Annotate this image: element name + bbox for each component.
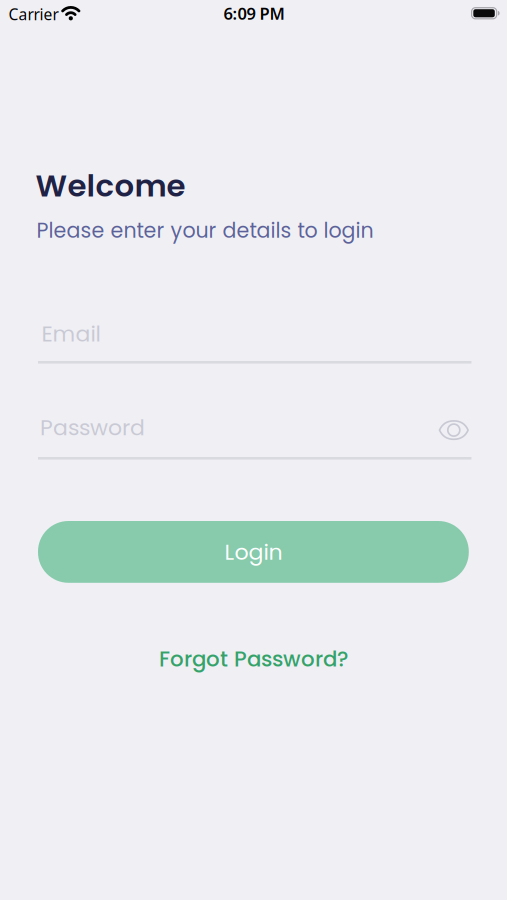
button[interactable]: Password xyxy=(38,412,471,460)
staticText: Forgot Password? xyxy=(159,644,348,674)
button[interactable]: Show password xyxy=(439,419,469,441)
staticText: Login xyxy=(224,536,282,567)
staticText: Please enter your details to login xyxy=(37,216,374,245)
button[interactable]: Login xyxy=(38,521,469,583)
staticText: Carrier xyxy=(8,4,58,25)
staticText: Welcome xyxy=(35,164,185,207)
staticText: Email xyxy=(41,318,100,349)
button[interactable]: Email xyxy=(38,318,471,364)
staticText: Password xyxy=(40,412,145,443)
staticText: 6:09 PM xyxy=(223,2,284,25)
button[interactable]: Forgot Password? xyxy=(159,644,348,674)
